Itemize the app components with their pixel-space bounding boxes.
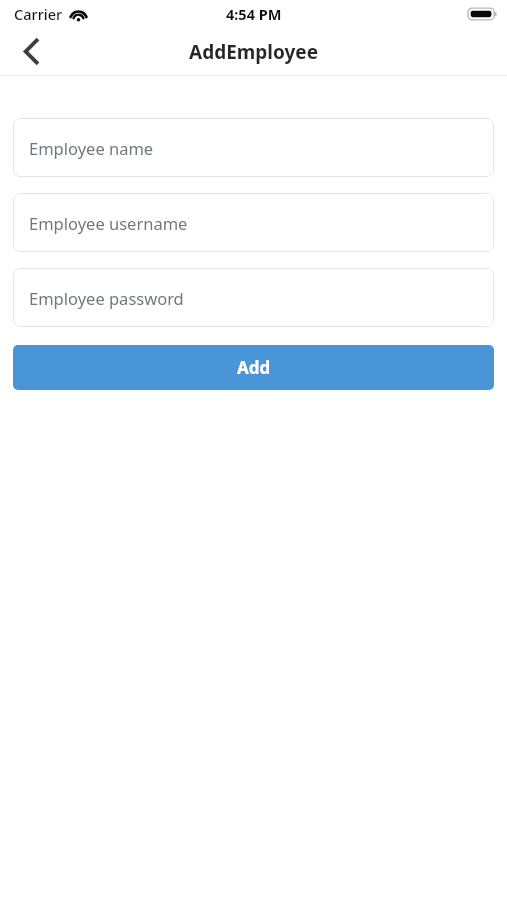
staticText: Add xyxy=(237,356,271,379)
button[interactable]: Employee password xyxy=(13,268,494,327)
staticText: Carrier xyxy=(14,4,63,24)
staticText: Employee name xyxy=(29,137,154,159)
staticText: Employee username xyxy=(29,212,188,234)
staticText: AddEmployee xyxy=(189,39,319,65)
button[interactable]: Add xyxy=(13,345,494,390)
button[interactable]: Employee username xyxy=(13,193,494,252)
staticText: Employee password xyxy=(29,287,184,309)
staticText: 4:54 PM xyxy=(226,4,282,24)
button[interactable]: Employee name xyxy=(13,118,494,177)
button[interactable]: Back xyxy=(0,28,62,75)
